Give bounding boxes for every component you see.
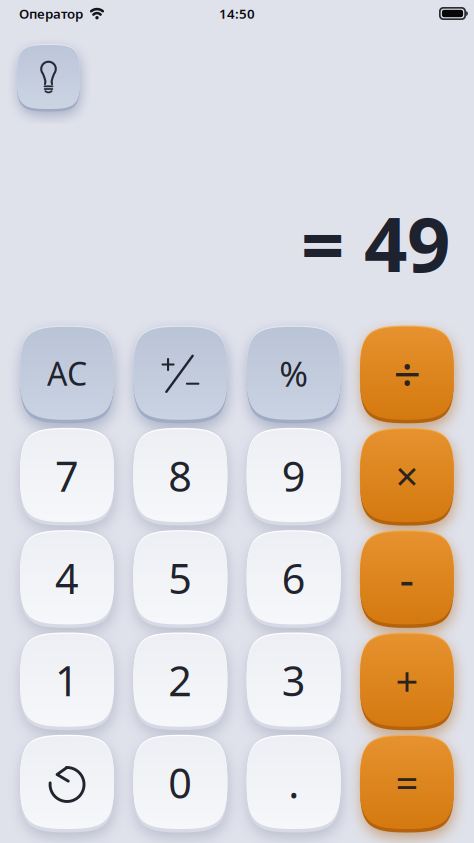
- staticText: %: [279, 350, 308, 396]
- staticText: 2: [168, 653, 192, 708]
- button[interactable]: Undo: [20, 736, 114, 829]
- button[interactable]: All clear: [20, 327, 114, 420]
- staticText: ×: [395, 449, 418, 502]
- staticText: ÷: [393, 341, 420, 405]
- button[interactable]: Decimal point: [247, 736, 341, 829]
- button[interactable]: Plus minus: [133, 327, 227, 420]
- button[interactable]: 3: [247, 634, 341, 727]
- staticText: =: [395, 756, 418, 809]
- button[interactable]: Minus: [360, 531, 454, 624]
- button[interactable]: 2: [133, 634, 227, 727]
- staticText: 5: [168, 550, 192, 605]
- button[interactable]: 5: [133, 531, 227, 624]
- button[interactable]: Divide: [360, 327, 454, 420]
- staticText: 14:50: [219, 5, 255, 22]
- staticText: 0: [168, 755, 192, 810]
- button[interactable]: Percent: [247, 327, 341, 420]
- staticText: .: [288, 755, 299, 810]
- staticText: AC: [47, 352, 87, 395]
- button[interactable]: 7: [20, 429, 114, 522]
- button[interactable]: 6: [247, 531, 341, 624]
- button[interactable]: 4: [20, 531, 114, 624]
- staticText: 8: [168, 448, 192, 503]
- button[interactable]: 8: [133, 429, 227, 522]
- button[interactable]: 9: [247, 429, 341, 522]
- button[interactable]: 1: [20, 634, 114, 727]
- button[interactable]: Multiply: [360, 429, 454, 522]
- staticText: +: [395, 654, 418, 707]
- button[interactable]: Equals: [360, 736, 454, 829]
- staticText: 3: [282, 653, 306, 708]
- button[interactable]: Theme: [17, 45, 80, 109]
- staticText: = 49: [301, 192, 450, 293]
- staticText: 4: [55, 550, 79, 605]
- staticText: Оператор: [19, 5, 83, 22]
- staticText: 1: [55, 653, 79, 708]
- staticText: 9: [282, 448, 306, 503]
- staticText: 6: [282, 550, 306, 605]
- button[interactable]: Plus: [360, 634, 454, 727]
- staticText: -: [399, 548, 414, 608]
- button[interactable]: 0: [133, 736, 227, 829]
- staticText: 7: [55, 448, 79, 503]
